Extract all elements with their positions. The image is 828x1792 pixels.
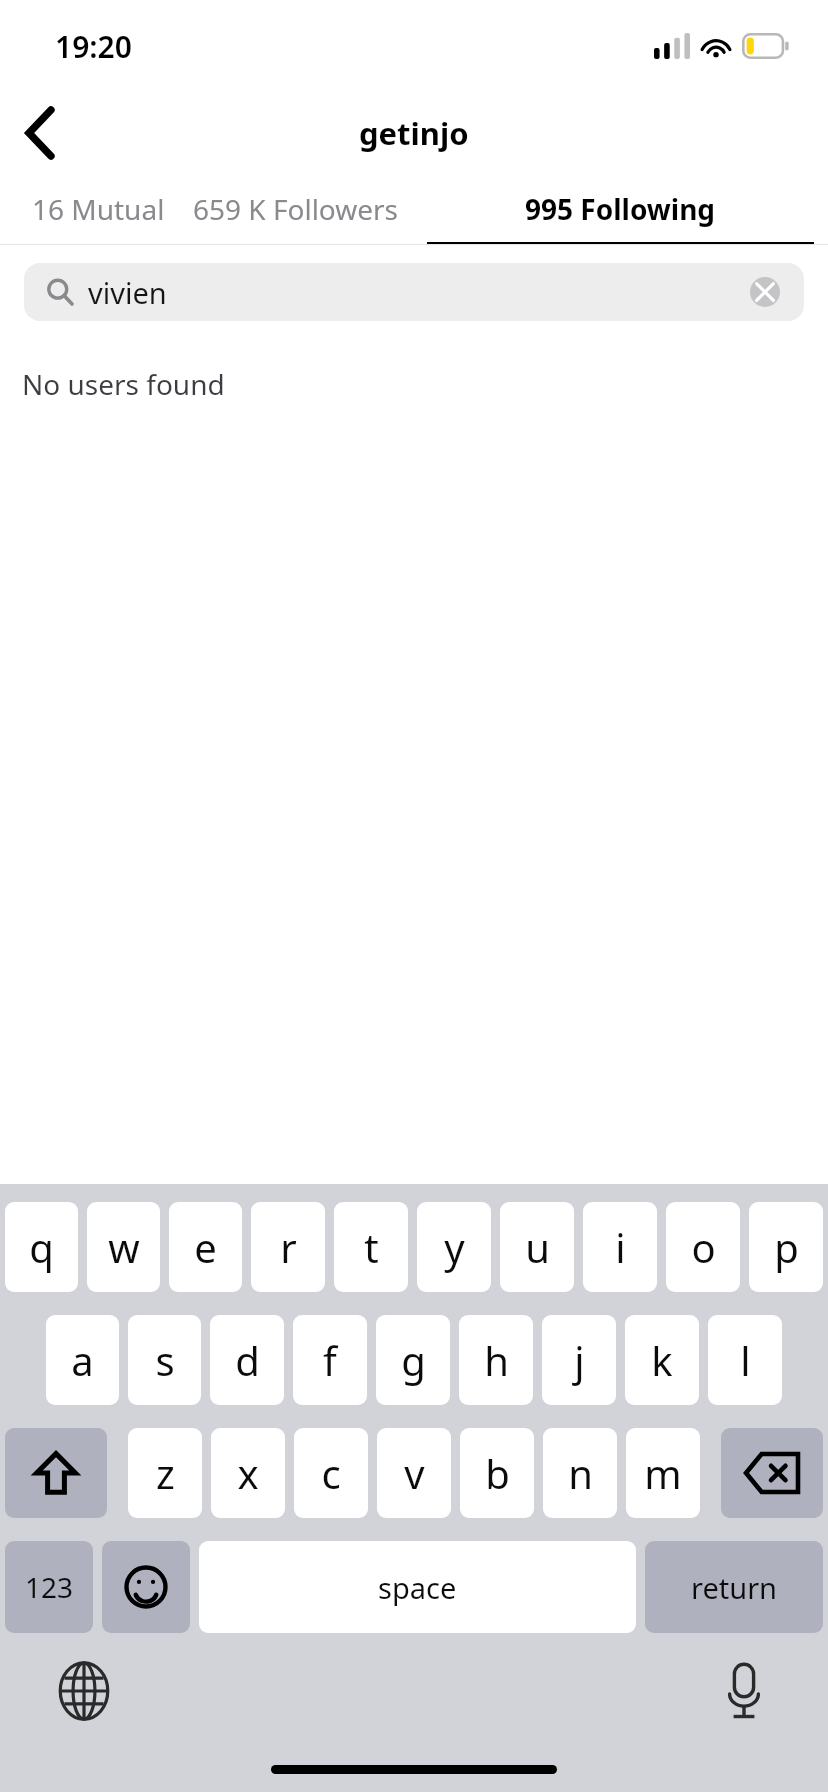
- button[interactable]: t: [334, 1202, 408, 1292]
- button[interactable]: m: [626, 1428, 700, 1518]
- staticText: z: [156, 1446, 175, 1500]
- button[interactable]: vivien: [24, 263, 804, 321]
- staticText: getinjo: [359, 112, 469, 154]
- staticText: No users found: [22, 365, 225, 403]
- button[interactable]: j: [542, 1315, 616, 1405]
- button[interactable]: v: [377, 1428, 451, 1518]
- staticText: e: [194, 1220, 217, 1274]
- button[interactable]: e: [169, 1202, 242, 1292]
- button[interactable]: p: [749, 1202, 823, 1292]
- button[interactable]: i: [583, 1202, 657, 1292]
- staticText: q: [29, 1220, 54, 1274]
- staticText: t: [364, 1220, 379, 1274]
- button[interactable]: 995 Following: [413, 174, 828, 244]
- staticText: k: [651, 1333, 673, 1387]
- button[interactable]: r: [251, 1202, 325, 1292]
- staticText: u: [525, 1220, 550, 1274]
- staticText: p: [774, 1220, 799, 1274]
- button[interactable]: x: [211, 1428, 285, 1518]
- button[interactable]: a: [46, 1315, 119, 1405]
- button[interactable]: u: [500, 1202, 574, 1292]
- staticText: v: [404, 1446, 425, 1500]
- staticText: n: [568, 1446, 593, 1500]
- staticText: space: [378, 1568, 457, 1607]
- button[interactable]: space: [199, 1541, 636, 1633]
- button[interactable]: k: [625, 1315, 699, 1405]
- staticText: 19:20: [55, 26, 132, 67]
- button[interactable]: g: [376, 1315, 450, 1405]
- staticText: 659 K Followers: [193, 190, 399, 228]
- button[interactable]: o: [666, 1202, 740, 1292]
- button[interactable]: 659 K Followers: [179, 174, 413, 242]
- staticText: s: [155, 1333, 175, 1387]
- staticText: h: [484, 1333, 509, 1387]
- staticText: return: [691, 1568, 778, 1607]
- button[interactable]: y: [417, 1202, 491, 1292]
- staticText: l: [740, 1333, 751, 1387]
- button[interactable]: s: [128, 1315, 201, 1405]
- staticText: r: [280, 1220, 297, 1274]
- staticText: b: [485, 1446, 510, 1500]
- button[interactable]: Change keyboard language: [52, 1659, 116, 1723]
- staticText: vivien: [88, 273, 167, 312]
- button[interactable]: 123: [5, 1541, 93, 1633]
- button[interactable]: c: [294, 1428, 368, 1518]
- staticText: x: [237, 1446, 259, 1500]
- button[interactable]: 16 Mutual: [18, 174, 179, 242]
- staticText: w: [108, 1220, 140, 1274]
- button[interactable]: q: [5, 1202, 78, 1292]
- button[interactable]: f: [293, 1315, 367, 1405]
- staticText: j: [574, 1333, 585, 1387]
- staticText: d: [235, 1333, 260, 1387]
- staticText: 123: [25, 1568, 74, 1606]
- button[interactable]: Emoji: [102, 1541, 190, 1633]
- button[interactable]: Backspace: [721, 1428, 823, 1518]
- staticText: 16 Mutual: [32, 190, 165, 228]
- staticText: i: [615, 1220, 626, 1274]
- button[interactable]: w: [87, 1202, 160, 1292]
- staticText: o: [691, 1220, 716, 1274]
- staticText: y: [444, 1220, 465, 1274]
- button[interactable]: Dictation: [712, 1659, 776, 1723]
- staticText: c: [321, 1446, 341, 1500]
- button[interactable]: Clear search: [748, 275, 782, 309]
- button[interactable]: z: [128, 1428, 202, 1518]
- staticText: 995 Following: [525, 190, 716, 228]
- staticText: g: [401, 1333, 426, 1387]
- button[interactable]: Shift: [5, 1428, 107, 1518]
- button[interactable]: Back: [0, 92, 80, 174]
- staticText: f: [323, 1333, 337, 1387]
- button[interactable]: h: [459, 1315, 533, 1405]
- button[interactable]: l: [708, 1315, 782, 1405]
- button[interactable]: b: [460, 1428, 534, 1518]
- button[interactable]: n: [543, 1428, 617, 1518]
- button[interactable]: d: [210, 1315, 284, 1405]
- staticText: a: [71, 1333, 94, 1387]
- button[interactable]: return: [645, 1541, 823, 1633]
- staticText: m: [644, 1446, 682, 1500]
